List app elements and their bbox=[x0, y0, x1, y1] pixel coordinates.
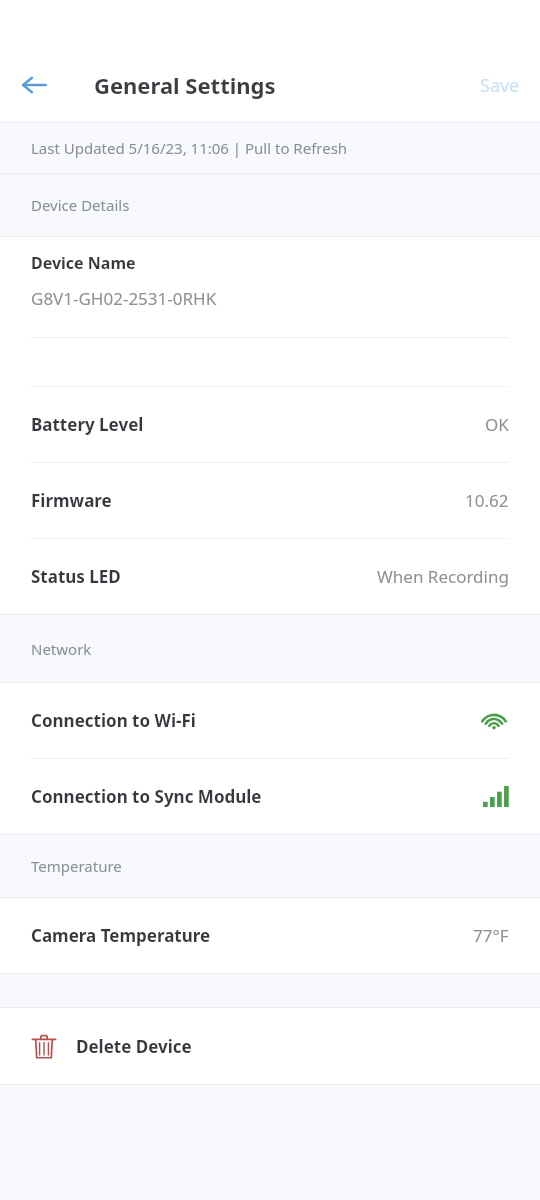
button[interactable]: Save bbox=[460, 59, 540, 112]
button[interactable]: Back bbox=[11, 62, 57, 108]
button[interactable]: Camera Temperature bbox=[0, 898, 540, 973]
staticText: Battery Level bbox=[31, 413, 144, 436]
other: Wi-Fi connected bbox=[479, 709, 509, 733]
button[interactable]: Firmware bbox=[0, 463, 540, 538]
staticText: Connection to Wi-Fi bbox=[31, 709, 196, 732]
staticText: Save bbox=[480, 73, 520, 98]
staticText: Device Details bbox=[31, 195, 130, 215]
button[interactable]: Connection to Wi-Fi bbox=[0, 683, 540, 758]
staticText: Camera Temperature bbox=[31, 924, 211, 947]
staticText: Firmware bbox=[31, 489, 112, 512]
button[interactable]: Delete Device bbox=[0, 1008, 540, 1084]
staticText: 10.62 bbox=[465, 489, 509, 512]
staticText: Delete Device bbox=[76, 1035, 192, 1058]
button[interactable]: Last Updated 5/16/23, 11:06 | Pull to Re… bbox=[0, 123, 540, 173]
other: Sync module signal bbox=[483, 785, 509, 809]
staticText: G8V1-GH02-2531-0RHK bbox=[31, 287, 217, 310]
button[interactable]: Battery Level bbox=[0, 387, 540, 462]
button[interactable]: Status LED bbox=[0, 539, 540, 614]
staticText: Temperature bbox=[31, 856, 122, 876]
staticText: Connection to Sync Module bbox=[31, 785, 262, 808]
staticText: OK bbox=[485, 413, 509, 436]
staticText: General Settings bbox=[94, 70, 276, 100]
staticText: When Recording bbox=[377, 565, 509, 588]
staticText: Device Name bbox=[31, 252, 136, 274]
staticText: 77°F bbox=[473, 924, 509, 947]
staticText: Network bbox=[31, 639, 92, 659]
button[interactable]: Connection to Sync Module bbox=[0, 759, 540, 834]
staticText: Last Updated 5/16/23, 11:06 | Pull to Re… bbox=[31, 138, 348, 158]
staticText: Status LED bbox=[31, 565, 121, 588]
